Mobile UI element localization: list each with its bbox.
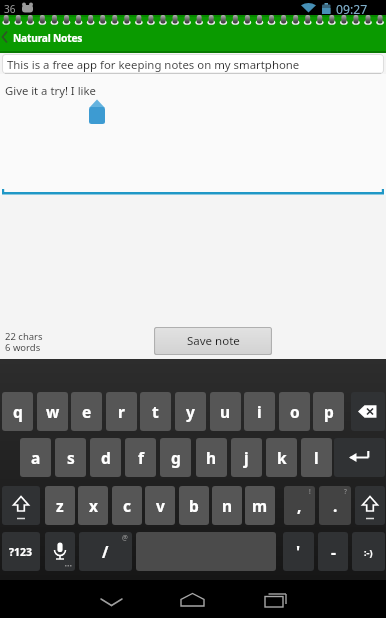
staticText: a bbox=[31, 447, 41, 468]
button[interactable]: . bbox=[319, 486, 351, 525]
button[interactable]: s bbox=[55, 438, 86, 477]
button[interactable]: d bbox=[90, 438, 121, 477]
staticText: z bbox=[56, 495, 64, 516]
staticText: / bbox=[102, 541, 109, 562]
button[interactable]: b bbox=[179, 486, 209, 525]
button[interactable]: a bbox=[20, 438, 51, 477]
button[interactable] bbox=[351, 392, 385, 431]
staticText: 09:27 bbox=[336, 1, 368, 18]
staticText: 36 bbox=[4, 2, 16, 16]
button[interactable] bbox=[45, 532, 75, 571]
button[interactable]: m bbox=[245, 486, 275, 525]
button[interactable]: ?123 bbox=[2, 532, 40, 571]
button[interactable]: g bbox=[160, 438, 191, 477]
button[interactable]: e bbox=[71, 392, 102, 431]
button[interactable]: r bbox=[106, 392, 137, 431]
button[interactable]: , bbox=[284, 486, 315, 525]
staticText: @ bbox=[122, 533, 128, 542]
staticText: j bbox=[244, 447, 249, 468]
staticText: n bbox=[222, 495, 233, 516]
staticText: Save note bbox=[187, 333, 240, 349]
button[interactable] bbox=[2, 486, 40, 525]
button[interactable] bbox=[91, 584, 133, 614]
button[interactable] bbox=[2, 54, 384, 74]
staticText: Give it a try! I like bbox=[5, 83, 96, 98]
staticText: w bbox=[46, 401, 60, 422]
staticText: m bbox=[252, 495, 268, 516]
staticText: h bbox=[206, 447, 217, 468]
staticText: , bbox=[297, 495, 302, 516]
button[interactable]: Save note bbox=[154, 327, 272, 355]
staticText: q bbox=[13, 401, 23, 422]
button[interactable] bbox=[0, 15, 386, 53]
staticText: Natural Notes bbox=[13, 31, 83, 45]
staticText: ? bbox=[344, 487, 347, 496]
staticText: y bbox=[186, 401, 195, 422]
staticText: s bbox=[67, 447, 75, 468]
button[interactable] bbox=[0, 74, 386, 195]
button[interactable] bbox=[334, 438, 385, 477]
button[interactable]: n bbox=[212, 486, 242, 525]
staticText: ?123 bbox=[9, 545, 33, 559]
button[interactable]: x bbox=[78, 486, 108, 525]
staticText: l bbox=[314, 447, 319, 468]
staticText: c bbox=[123, 495, 131, 516]
button[interactable]: l bbox=[301, 438, 332, 477]
staticText: e bbox=[82, 401, 92, 422]
staticText: u bbox=[220, 401, 231, 422]
staticText: d bbox=[101, 447, 111, 468]
button[interactable]: k bbox=[266, 438, 297, 477]
staticText: x bbox=[89, 495, 98, 516]
staticText: . bbox=[333, 495, 338, 516]
button[interactable] bbox=[172, 584, 214, 614]
button[interactable]: j bbox=[231, 438, 262, 477]
staticText: ! bbox=[309, 487, 311, 496]
staticText: 22 chars bbox=[5, 330, 43, 343]
staticText: b bbox=[189, 495, 199, 516]
staticText: t bbox=[152, 401, 159, 422]
button[interactable] bbox=[255, 584, 297, 614]
staticText: r bbox=[118, 401, 125, 422]
button[interactable]: y bbox=[175, 392, 206, 431]
staticText: k bbox=[277, 447, 287, 468]
staticText: This is a free app for keeping notes on … bbox=[7, 57, 300, 73]
staticText: ' bbox=[296, 541, 301, 562]
button[interactable]: ' bbox=[283, 532, 314, 571]
button[interactable]: t bbox=[140, 392, 171, 431]
button[interactable]: :-) bbox=[352, 532, 385, 571]
button[interactable]: f bbox=[125, 438, 156, 477]
staticText: g bbox=[171, 447, 181, 468]
staticText: :-) bbox=[364, 546, 373, 558]
staticText: 6 words bbox=[5, 341, 41, 354]
button[interactable]: z bbox=[45, 486, 75, 525]
button[interactable]: - bbox=[318, 532, 348, 571]
button[interactable]: h bbox=[196, 438, 227, 477]
button[interactable]: p bbox=[313, 392, 344, 431]
staticText: p bbox=[324, 401, 334, 422]
button[interactable] bbox=[355, 486, 385, 525]
staticText: i bbox=[257, 401, 262, 422]
button[interactable]: i bbox=[244, 392, 275, 431]
staticText: - bbox=[331, 541, 336, 562]
staticText: f bbox=[138, 447, 144, 468]
button[interactable]: q bbox=[2, 392, 33, 431]
button[interactable]: v bbox=[145, 486, 175, 525]
staticText: o bbox=[290, 401, 300, 422]
button[interactable]: u bbox=[210, 392, 241, 431]
button[interactable]: o bbox=[279, 392, 310, 431]
staticText: v bbox=[156, 495, 165, 516]
button[interactable]: c bbox=[112, 486, 142, 525]
button[interactable]: / bbox=[79, 532, 132, 571]
button[interactable]: w bbox=[37, 392, 68, 431]
